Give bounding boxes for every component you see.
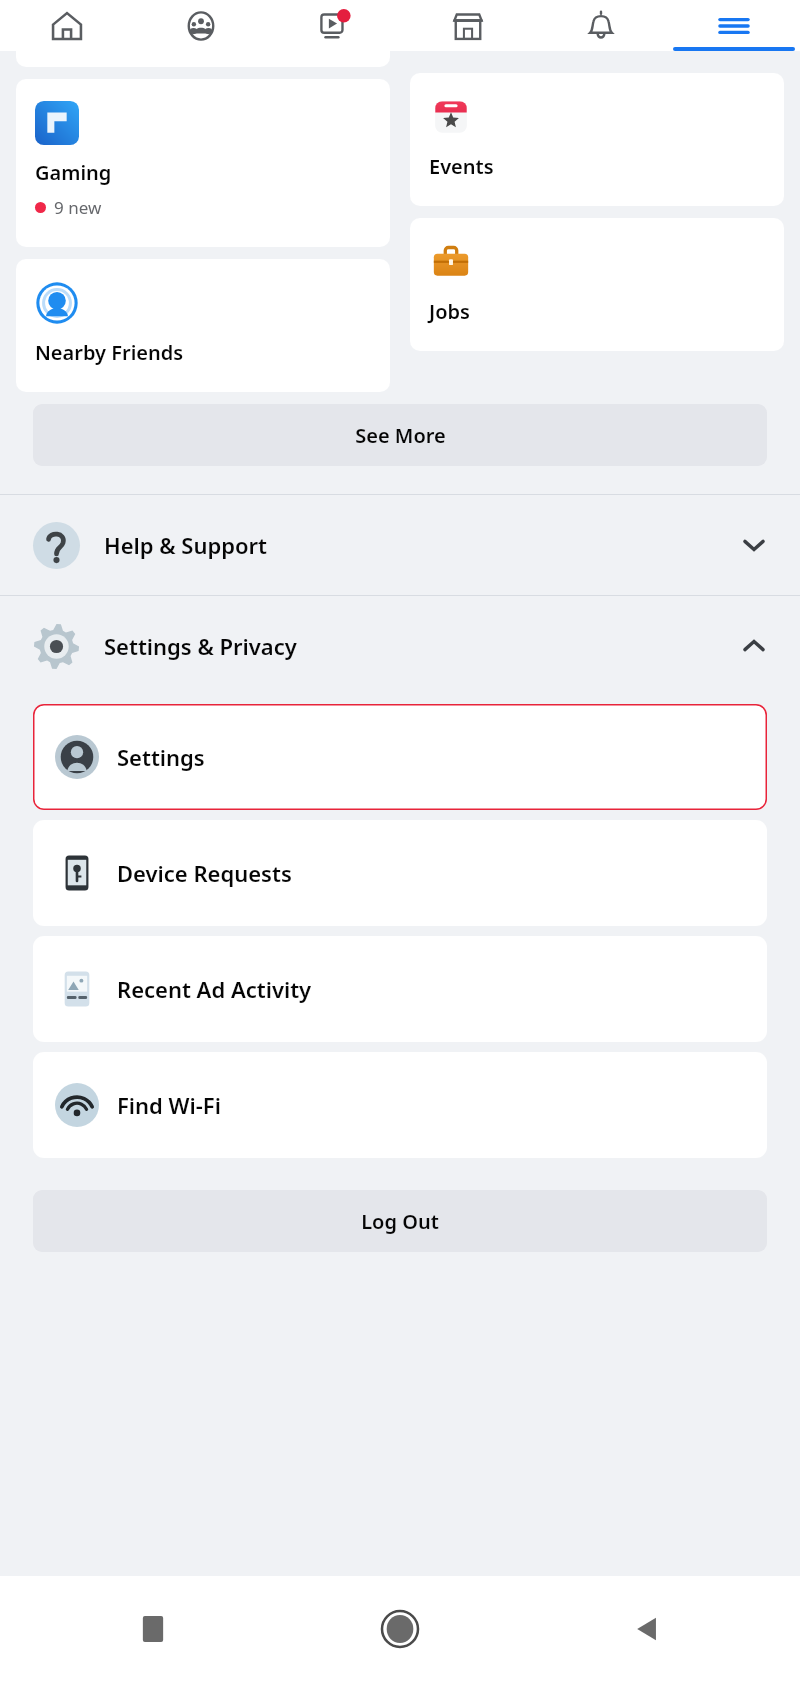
staticText: Gaming [35, 159, 112, 186]
button[interactable]: Marketplace [401, 0, 534, 51]
button[interactable]: Log Out [33, 1190, 767, 1252]
button[interactable]: Recents [30, 1576, 276, 1681]
staticText: Find Wi-Fi [117, 1090, 221, 1120]
button[interactable]: Find Wi-Fi [33, 1052, 767, 1158]
button[interactable]: Home [276, 1576, 523, 1681]
button[interactable]: Friends [134, 0, 268, 51]
button[interactable]: Help & Support [0, 495, 800, 595]
button[interactable]: Recent Ad Activity [33, 936, 767, 1042]
button[interactable]: Gaming [16, 79, 390, 247]
button[interactable]: Events [410, 73, 784, 206]
staticText: Log Out [361, 1208, 439, 1235]
staticText: Events [429, 153, 494, 180]
staticText: Jobs [429, 298, 470, 325]
button[interactable]: See More [33, 404, 767, 466]
button[interactable]: Menu [667, 0, 800, 51]
staticText: See More [355, 422, 446, 449]
staticText: Recent Ad Activity [117, 974, 312, 1004]
staticText: Device Requests [117, 858, 292, 888]
button[interactable]: Notifications [534, 0, 667, 51]
button[interactable]: Settings [33, 704, 767, 810]
button[interactable]: Nearby Friends [16, 259, 390, 392]
button[interactable]: Jobs [410, 218, 784, 351]
staticText: 9 new [54, 196, 102, 219]
button[interactable]: Watch [268, 0, 401, 51]
staticText: Settings & Privacy [104, 631, 297, 661]
staticText: Nearby Friends [35, 339, 184, 366]
button[interactable]: Settings & Privacy [0, 596, 800, 696]
button[interactable]: Home [0, 0, 134, 51]
staticText: Settings [117, 742, 205, 772]
staticText: Help & Support [104, 530, 268, 560]
button[interactable]: Device Requests [33, 820, 767, 926]
button[interactable]: Back [523, 1576, 770, 1681]
